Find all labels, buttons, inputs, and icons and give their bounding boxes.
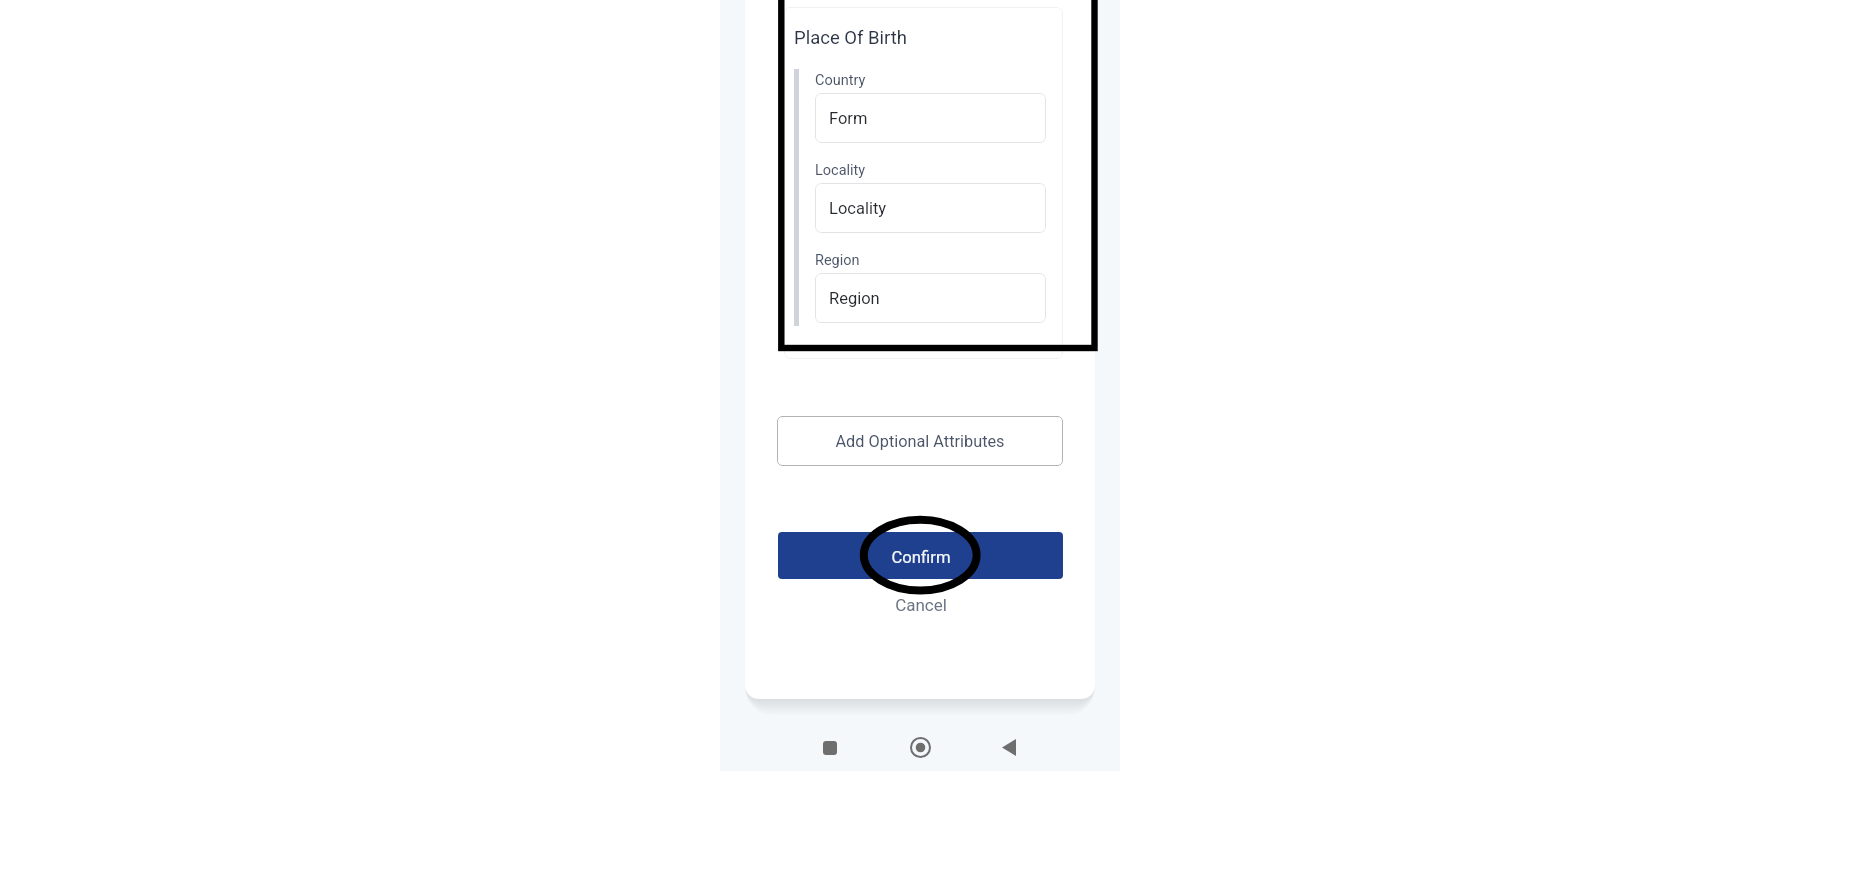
staticText: Confirm [891,548,951,568]
button[interactable]: Form [815,93,1046,143]
staticText: Locality [829,199,887,218]
staticText: Add Optional Attributes [835,432,1005,451]
button[interactable]: Home [890,715,950,780]
staticText: Place Of Birth [794,27,908,49]
button[interactable]: Confirm [778,532,1063,579]
staticText: Form [829,109,868,128]
button[interactable]: Add Optional Attributes [777,416,1063,466]
staticText: Locality [815,162,866,179]
staticText: Region [829,289,880,308]
button[interactable]: Cancel [778,590,1063,620]
button[interactable]: Region [815,273,1046,323]
staticText: Cancel [895,595,947,615]
button[interactable]: Back [979,715,1039,780]
button[interactable]: Recent apps [800,715,860,780]
button[interactable]: Locality [815,183,1046,233]
staticText: Region [815,252,860,269]
staticText: Country [815,72,866,89]
